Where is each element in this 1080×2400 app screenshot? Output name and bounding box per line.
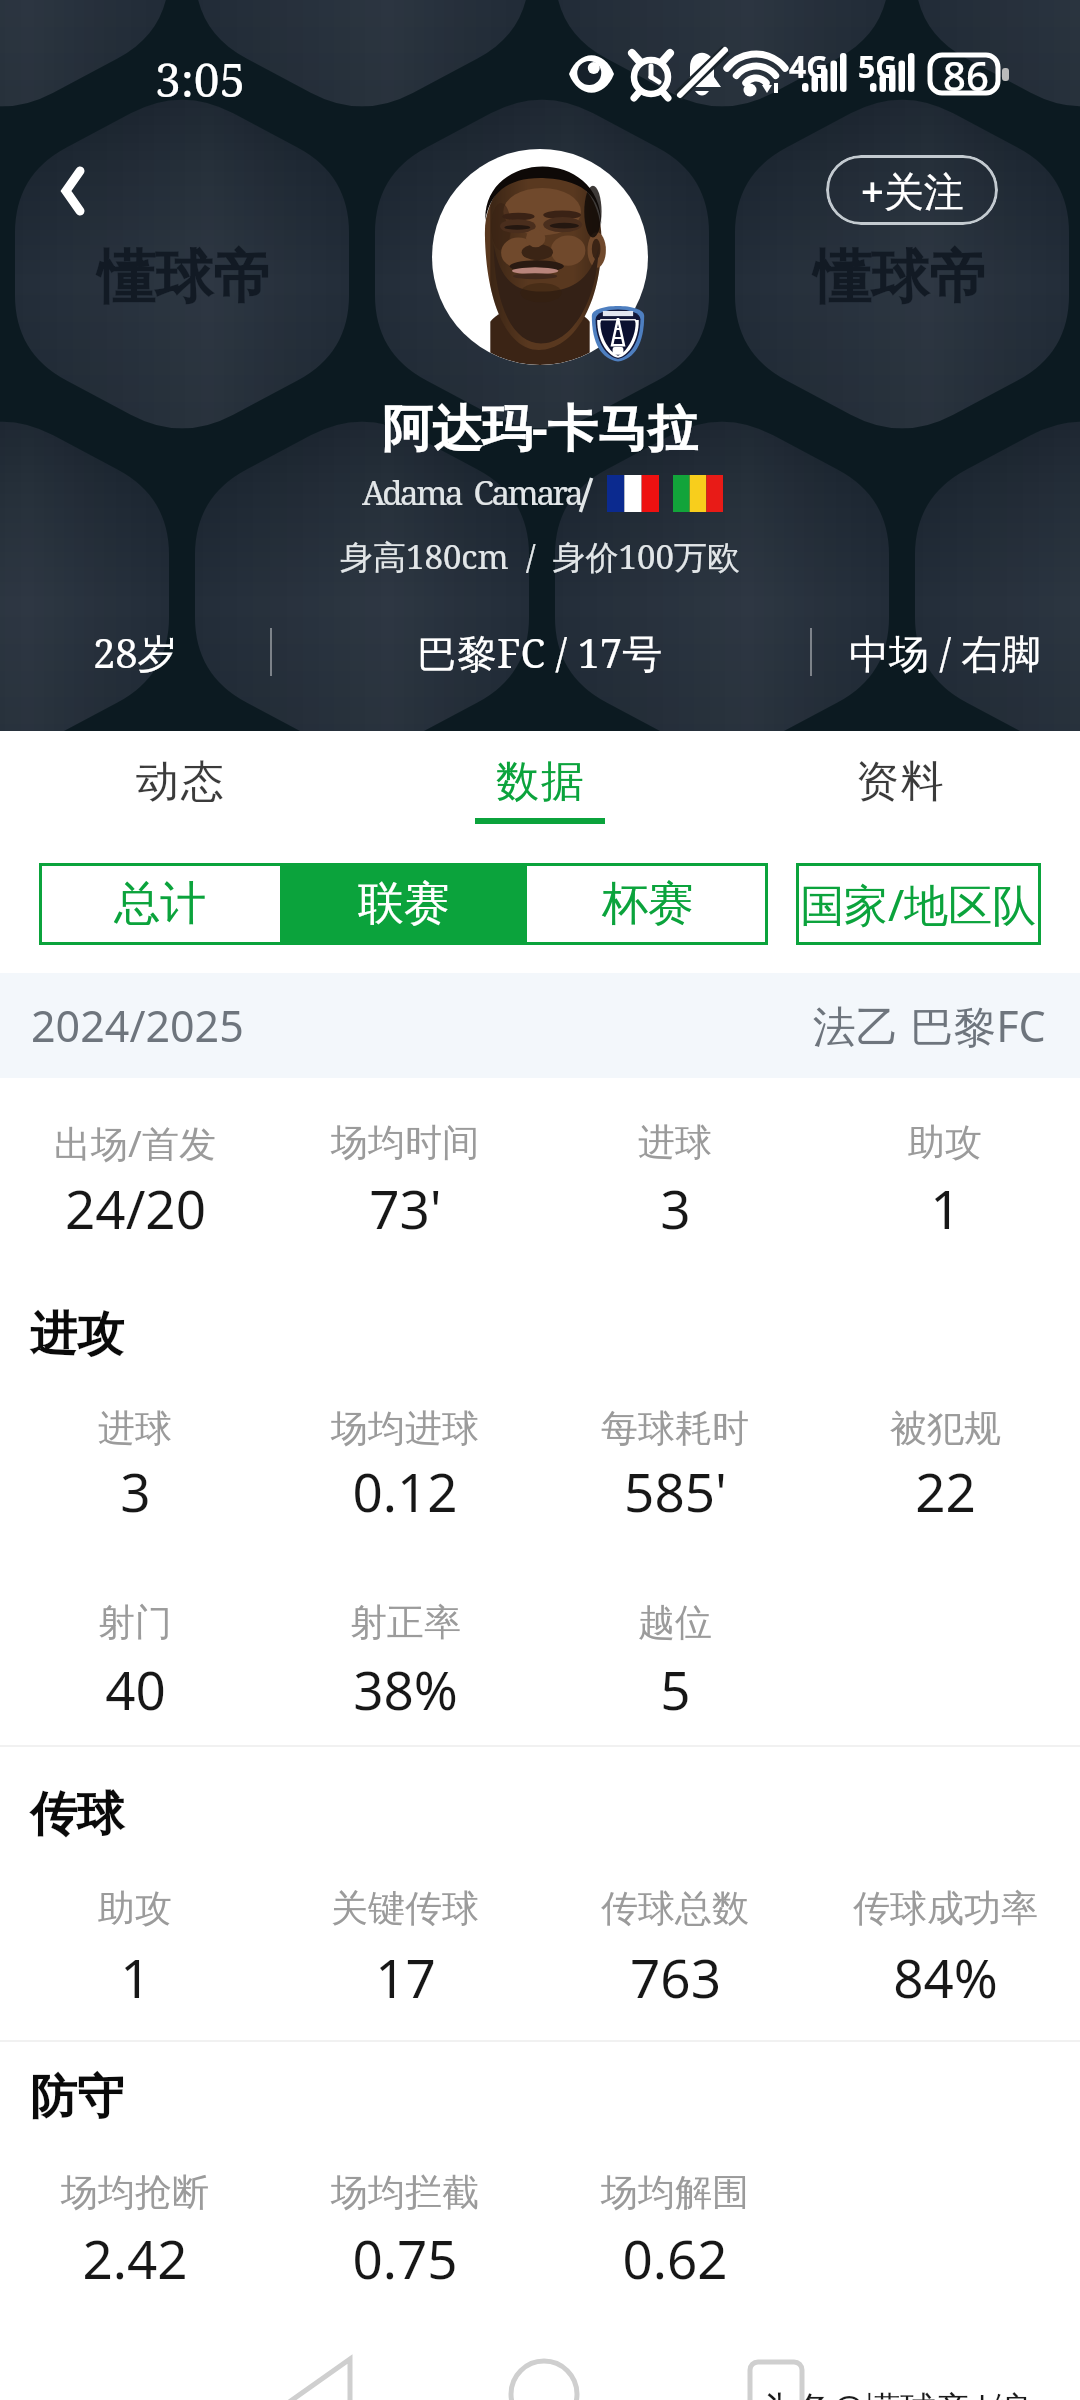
staticText: 585' bbox=[624, 1455, 727, 1527]
staticText: 头条@懂球帝|综.. bbox=[760, 2384, 1048, 2400]
staticText: 法乙 巴黎FC bbox=[813, 996, 1046, 1055]
staticText: 射门 bbox=[98, 1599, 172, 1646]
staticText: 每球耗时 bbox=[601, 1405, 749, 1452]
staticText: 联赛 bbox=[358, 875, 450, 933]
staticText: 杯赛 bbox=[602, 875, 694, 933]
staticText: 场均进球 bbox=[331, 1405, 479, 1452]
staticText: 24/20 bbox=[65, 1172, 206, 1244]
staticText: 关键传球 bbox=[331, 1885, 479, 1932]
staticText: 38% bbox=[353, 1653, 458, 1725]
button[interactable]: Back bbox=[265, 2340, 355, 2400]
staticText: Adama Camara bbox=[362, 470, 582, 515]
staticText: 数据 bbox=[495, 755, 585, 809]
button[interactable]: +关注 bbox=[826, 155, 998, 225]
staticText: 传球总数 bbox=[601, 1885, 749, 1932]
staticText: 2024/2025 bbox=[31, 996, 244, 1055]
button[interactable]: 联赛 bbox=[283, 863, 524, 945]
staticText: 73' bbox=[369, 1172, 442, 1244]
button[interactable]: Recents bbox=[728, 2340, 818, 2400]
staticText: 4G bbox=[789, 46, 828, 87]
staticText: 进攻 bbox=[30, 1305, 124, 1364]
staticText: 3:05 bbox=[155, 48, 246, 111]
button[interactable]: 动态 bbox=[0, 731, 360, 853]
staticText: 5G bbox=[858, 46, 897, 87]
button[interactable]: 总计 bbox=[39, 863, 280, 945]
staticText: 阿达玛-卡马拉 bbox=[382, 393, 698, 461]
staticText: 巴黎FC / 17号 bbox=[417, 625, 663, 680]
staticText: 越位 bbox=[638, 1599, 712, 1646]
staticText: 0.12 bbox=[352, 1455, 458, 1527]
staticText: 22 bbox=[915, 1455, 976, 1527]
staticText: 进球 bbox=[638, 1119, 712, 1166]
button[interactable]: 国家/地区队 bbox=[796, 863, 1041, 945]
staticText: 3 bbox=[660, 1172, 691, 1244]
staticText: 1 bbox=[930, 1172, 961, 1244]
staticText: 3 bbox=[120, 1455, 151, 1527]
staticText: 传球成功率 bbox=[853, 1885, 1038, 1932]
staticText: 助攻 bbox=[98, 1885, 172, 1932]
button[interactable]: 资料 bbox=[720, 731, 1080, 853]
staticText: 总计 bbox=[114, 875, 206, 933]
staticText: 资料 bbox=[855, 755, 945, 809]
staticText: 被犯规 bbox=[890, 1405, 1001, 1452]
staticText: 国家/地区队 bbox=[800, 874, 1037, 934]
staticText: 763 bbox=[630, 1941, 721, 2013]
button[interactable]: 数据 bbox=[360, 731, 720, 853]
staticText: 场均拦截 bbox=[331, 2169, 479, 2216]
staticText: 40 bbox=[105, 1653, 166, 1725]
staticText: 5 bbox=[660, 1653, 691, 1725]
staticText: 中场 / 右脚 bbox=[849, 625, 1042, 680]
staticText: 身高180cm / 身价100万欧 bbox=[340, 534, 740, 579]
button[interactable]: Back bbox=[28, 146, 120, 238]
staticText: 86 bbox=[943, 48, 989, 102]
staticText: 进球 bbox=[98, 1405, 172, 1452]
button[interactable]: Home bbox=[500, 2340, 590, 2400]
staticText: 1 bbox=[120, 1941, 151, 2013]
staticText: +关注 bbox=[861, 163, 964, 218]
staticText: 懂球帝 bbox=[813, 241, 987, 314]
staticText: 0.62 bbox=[622, 2222, 728, 2294]
staticText: 射正率 bbox=[350, 1599, 461, 1646]
staticText: 84% bbox=[893, 1941, 998, 2013]
staticText: 出场/首发 bbox=[54, 1117, 216, 1168]
staticText: 0.75 bbox=[352, 2222, 458, 2294]
staticText: 场均解围 bbox=[601, 2169, 749, 2216]
button[interactable]: 杯赛 bbox=[527, 863, 768, 945]
staticText: 2.42 bbox=[82, 2222, 188, 2294]
staticText: 场均抢断 bbox=[61, 2169, 209, 2216]
staticText: 28岁 bbox=[93, 625, 178, 680]
staticText: 动态 bbox=[135, 755, 225, 809]
staticText: 防守 bbox=[30, 2068, 124, 2127]
staticText: 传球 bbox=[30, 1785, 124, 1844]
staticText: 17 bbox=[375, 1941, 436, 2013]
staticText: 助攻 bbox=[908, 1119, 982, 1166]
staticText: 懂球帝 bbox=[97, 241, 271, 314]
staticText: 场均时间 bbox=[331, 1119, 479, 1166]
